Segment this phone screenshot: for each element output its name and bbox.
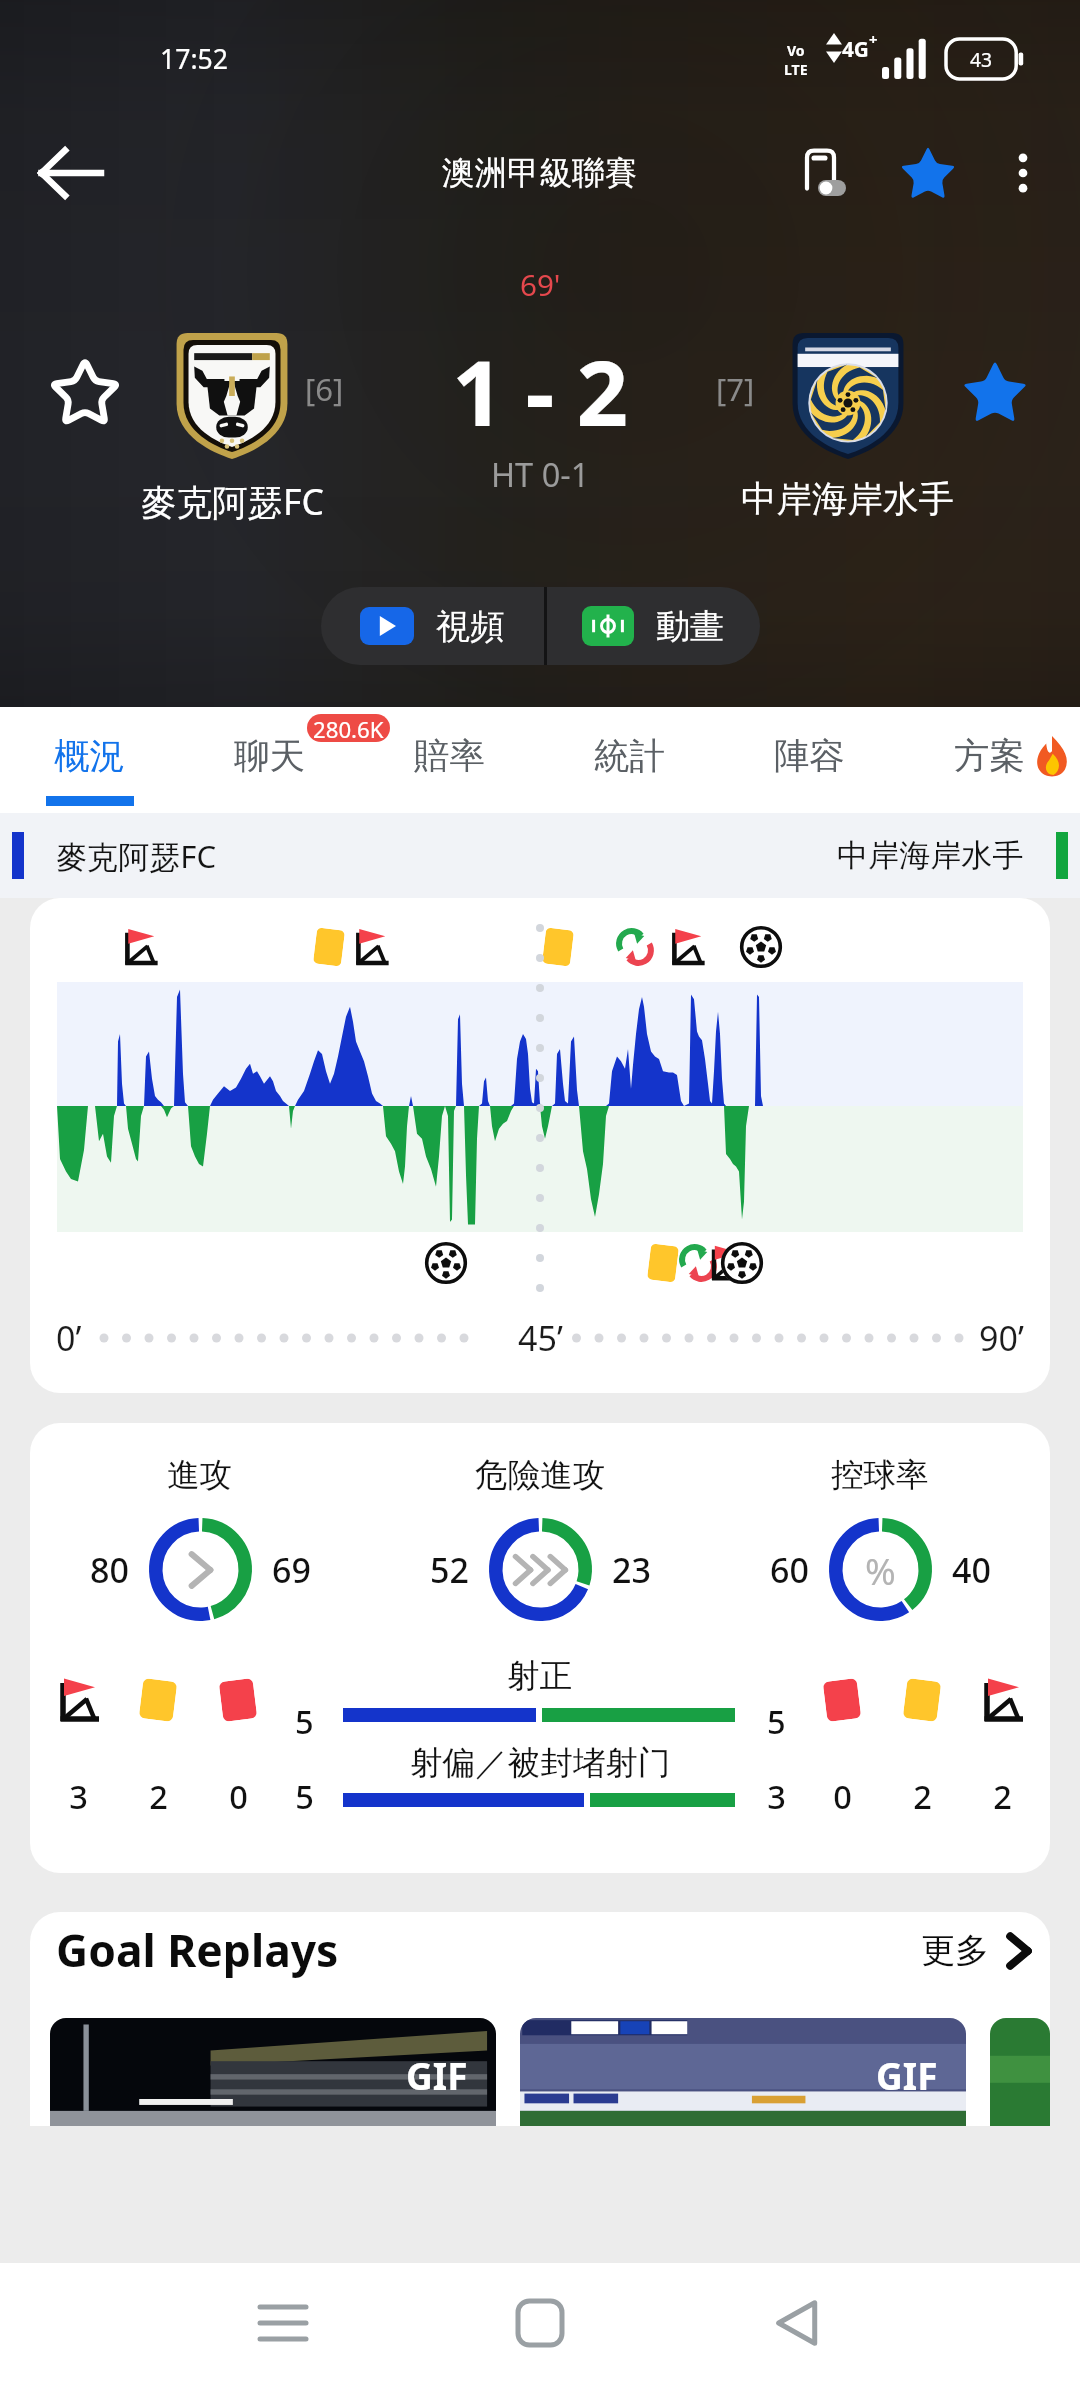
staticText: 危險進攻 — [475, 1455, 606, 1496]
button[interactable]: 賠率 — [360, 707, 540, 813]
button[interactable]: Goal replay 1 — [50, 2018, 496, 2126]
staticText: [7] — [716, 368, 755, 410]
staticText: 45’ — [518, 1315, 563, 1361]
button[interactable]: 動畫 — [547, 587, 760, 665]
staticText: 視頻 — [436, 605, 505, 648]
staticText: 動畫 — [656, 605, 725, 648]
staticText: + — [869, 29, 878, 49]
staticText: 69 — [272, 1547, 311, 1593]
staticText: 方案 — [954, 734, 1026, 779]
staticText: 23 — [612, 1547, 651, 1593]
button[interactable]: Notifications — [790, 135, 866, 211]
staticText: 概況 — [54, 734, 126, 779]
staticText: Goal Replays — [56, 1920, 339, 1980]
button[interactable]: 統計 — [540, 707, 720, 813]
staticText: 280.6K — [313, 714, 384, 742]
staticText: 更多 — [921, 1929, 990, 1972]
staticText: 麥克阿瑟FC — [141, 477, 324, 526]
staticText: 2 — [149, 1774, 168, 1818]
staticText: Vo — [787, 41, 805, 60]
staticText: 陣容 — [774, 734, 846, 779]
staticText: 43 — [970, 46, 993, 72]
staticText: HT 0-1 — [491, 452, 590, 496]
button[interactable]: Macarthur FC — [168, 332, 296, 460]
button[interactable]: 概況 — [0, 707, 180, 813]
button[interactable]: 視頻 — [321, 587, 544, 665]
button[interactable]: Back — [22, 125, 118, 221]
staticText: 17:52 — [160, 41, 229, 77]
staticText: 52 — [430, 1547, 469, 1593]
staticText: 射正 — [507, 1656, 573, 1697]
button[interactable]: Recents — [223, 2281, 343, 2365]
staticText: 40 — [952, 1547, 991, 1593]
button[interactable]: Central Coast Mariners — [784, 332, 912, 460]
staticText: 5 — [767, 1699, 786, 1743]
staticText: 5 — [295, 1699, 314, 1743]
staticText: 聊天 — [234, 734, 306, 779]
button[interactable]: 聊天 — [180, 707, 360, 813]
staticText: 60 — [770, 1547, 809, 1593]
staticText: 3 — [767, 1774, 786, 1818]
staticText: 90’ — [979, 1315, 1024, 1361]
button[interactable]: Goal replay 3 — [990, 2018, 1050, 2126]
staticText: 0 — [229, 1774, 248, 1818]
button[interactable]: Home — [480, 2281, 600, 2365]
staticText: 澳洲甲級聯賽 — [442, 153, 638, 194]
button[interactable]: 陣容 — [720, 707, 900, 813]
staticText: [6] — [305, 368, 344, 410]
staticText: 3 — [69, 1774, 88, 1818]
staticText: 中岸海岸水手 — [741, 477, 955, 522]
button[interactable]: 方案 — [900, 707, 1080, 813]
staticText: 統計 — [594, 734, 666, 779]
button[interactable]: Favourite — [890, 135, 966, 211]
button[interactable]: Remove Central Coast Mariners from favou… — [953, 350, 1037, 434]
staticText: 控球率 — [831, 1455, 929, 1496]
button[interactable]: Back — [738, 2281, 858, 2365]
staticText: 69' — [520, 264, 561, 304]
staticText: LTE — [784, 60, 808, 79]
staticText: 2 — [993, 1774, 1012, 1818]
staticText: 4G — [842, 35, 869, 63]
button[interactable]: Goal replay 2 — [520, 2018, 966, 2126]
button[interactable]: Add Macarthur FC to favourites — [43, 350, 127, 434]
staticText: GIF — [406, 2050, 468, 2100]
staticText: 0’ — [56, 1315, 82, 1361]
button[interactable]: More options — [988, 138, 1058, 208]
button[interactable]: 更多 — [921, 1921, 1030, 1980]
staticText: % — [865, 1545, 896, 1595]
staticText: 進攻 — [167, 1455, 233, 1496]
staticText: 0 — [833, 1774, 852, 1818]
staticText: 1 - 2 — [452, 329, 628, 452]
staticText: 5 — [295, 1774, 314, 1818]
staticText: 麥克阿瑟FC — [56, 835, 217, 877]
staticText: GIF — [876, 2050, 938, 2100]
staticText: 賠率 — [414, 734, 486, 779]
staticText: 中岸海岸水手 — [837, 836, 1024, 875]
staticText: 射偏／被封堵射门 — [410, 1743, 671, 1784]
staticText: 80 — [90, 1547, 129, 1593]
staticText: 2 — [913, 1774, 932, 1818]
